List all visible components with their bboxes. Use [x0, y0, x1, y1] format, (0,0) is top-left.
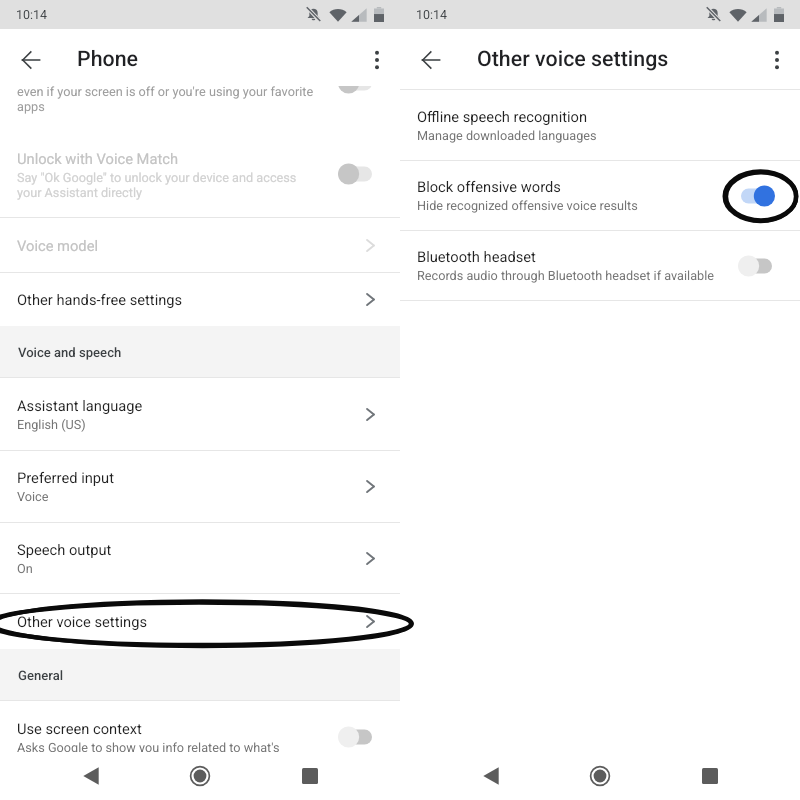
staticText: Voice model	[17, 237, 98, 254]
button[interactable]: More options	[763, 46, 791, 74]
button[interactable]: Other voice settings	[0, 594, 400, 649]
button[interactable]: Other hands-free settings	[0, 273, 400, 326]
staticText: Bluetooth headset	[417, 248, 536, 265]
staticText: Assistant language	[17, 397, 143, 414]
staticText: Hide recognized offensive voice results	[417, 198, 638, 213]
button[interactable]: Block offensive words	[400, 161, 800, 230]
staticText: English (US)	[17, 417, 86, 432]
staticText: 10:14	[16, 7, 48, 22]
staticText: even if your screen is off or you're usi…	[17, 86, 314, 115]
staticText: Voice and speech	[18, 345, 122, 360]
button[interactable]: Preferred input	[0, 451, 400, 522]
staticText: Records audio through Bluetooth headset …	[417, 268, 715, 283]
button[interactable]: Speech output	[0, 523, 400, 593]
staticText: Other voice settings	[17, 613, 147, 630]
button[interactable]: Assistant language	[0, 378, 400, 450]
button[interactable]: Recent apps	[687, 753, 733, 799]
button[interactable]: Offline speech recognition	[400, 90, 800, 160]
button[interactable]: Voice model	[0, 218, 400, 272]
staticText: Phone	[77, 46, 139, 71]
staticText: Use screen context	[17, 720, 142, 737]
staticText: Offline speech recognition	[417, 108, 588, 125]
button[interactable]: Back	[468, 753, 513, 799]
button[interactable]: Navigate up	[17, 46, 45, 74]
button[interactable]: Navigate up	[417, 46, 445, 74]
staticText: Block offensive words	[417, 178, 561, 195]
staticText: Manage downloaded languages	[417, 128, 597, 143]
staticText: General	[18, 668, 64, 683]
button[interactable]: Recent apps	[287, 753, 333, 799]
button[interactable]: Bluetooth headset	[400, 231, 800, 300]
button[interactable]: Back	[68, 753, 113, 799]
staticText: 10:14	[416, 7, 448, 22]
button[interactable]: More options	[363, 46, 391, 74]
staticText: On	[17, 561, 33, 576]
staticText: Say "Ok Google" to unlock your device an…	[17, 170, 297, 201]
button[interactable]: Home	[577, 753, 623, 799]
staticText: Asks Google to show you info related to …	[17, 740, 280, 755]
staticText: Unlock with Voice Match	[17, 150, 178, 167]
staticText: Other voice settings	[477, 46, 669, 71]
button[interactable]: Home	[177, 753, 223, 799]
staticText: Other hands-free settings	[17, 291, 183, 308]
staticText: Preferred input	[17, 469, 114, 486]
staticText: Speech output	[17, 541, 112, 558]
staticText: Voice	[17, 489, 49, 504]
